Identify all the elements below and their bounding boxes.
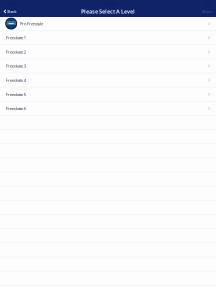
button[interactable]: Back — [0, 6, 20, 17]
staticText: Please Select A Level — [81, 8, 135, 15]
staticText: Back — [7, 9, 16, 14]
staticText: Pre-Freestyle — [20, 21, 43, 26]
button[interactable]: Freeskate 6 — [0, 102, 216, 116]
button[interactable]: Freeskate 1 — [0, 31, 216, 45]
button[interactable]: Pre-Freestyle — [0, 17, 216, 31]
staticText: 100% — [203, 0, 212, 6]
staticText: Freeskate 1 — [6, 35, 26, 40]
button[interactable]: Freeskate 2 — [0, 45, 216, 59]
staticText: Freeskate 5 — [6, 92, 26, 97]
staticText: 9:41 AM — [103, 0, 118, 6]
staticText: Freeskate 3 — [6, 63, 26, 69]
staticText: Freeskate 4 — [6, 77, 26, 83]
button[interactable]: Freeskate 5 — [0, 88, 216, 102]
button[interactable]: Freeskate 4 — [0, 74, 216, 88]
staticText: Store — [202, 9, 212, 14]
staticText: Freeskate 6 — [6, 106, 26, 111]
button[interactable]: Freeskate 3 — [0, 59, 216, 74]
staticText: Freeskate 2 — [6, 49, 26, 54]
button[interactable]: Store — [198, 6, 216, 17]
